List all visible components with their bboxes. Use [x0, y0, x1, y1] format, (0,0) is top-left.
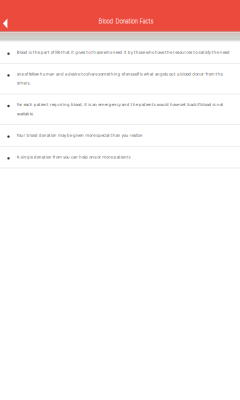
staticText: Your blood donation may be given more sp… [16, 133, 142, 138]
staticText: A single donation from you can help one … [16, 155, 131, 159]
button[interactable]: Back [0, 0, 13, 30]
button[interactable]: Your blood donation may be given more sp… [0, 125, 240, 147]
button[interactable]: one of fellow human and a desire to shar… [0, 64, 240, 94]
staticText: one of fellow human and a desire to shar… [16, 72, 222, 85]
staticText: Blood is the part of life that it gives … [16, 50, 230, 55]
staticText: For each patient requiring blood, it is … [16, 102, 223, 116]
button[interactable]: For each patient requiring blood, it is … [0, 94, 240, 125]
staticText: Blood Donation Facts [98, 18, 153, 25]
button[interactable]: A single donation from you can help one … [0, 147, 240, 168]
button[interactable]: Blood is the part of life that it gives … [0, 42, 240, 64]
